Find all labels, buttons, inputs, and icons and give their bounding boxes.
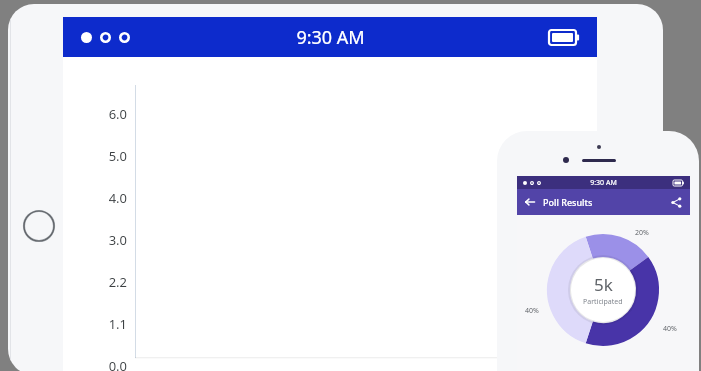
- staticText: 4.0: [108, 189, 127, 207]
- staticText: Participated: [583, 297, 623, 307]
- staticText: Poll Results: [543, 196, 593, 208]
- button[interactable]: Home: [23, 210, 55, 242]
- staticText: 2.2: [108, 273, 127, 291]
- staticText: 40%: [525, 306, 539, 316]
- other: Back: [524, 196, 536, 208]
- staticText: 3.0: [108, 231, 127, 249]
- staticText: 9:30 AM: [590, 178, 617, 188]
- button[interactable]: Back: [524, 196, 593, 208]
- staticText: 1.1: [108, 315, 127, 333]
- button[interactable]: [547, 234, 659, 346]
- button[interactable]: Share: [669, 195, 683, 209]
- staticText: 5.0: [108, 147, 127, 165]
- staticText: 20%: [635, 228, 649, 238]
- staticText: 5k: [594, 273, 613, 296]
- staticText: 0.0: [108, 357, 127, 371]
- staticText: 40%: [663, 324, 677, 334]
- staticText: 6.0: [108, 105, 127, 123]
- staticText: 9:30 AM: [296, 25, 365, 50]
